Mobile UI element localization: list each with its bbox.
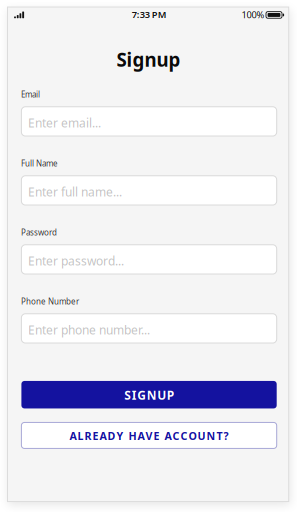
staticText: 7:33 PM [132, 8, 167, 21]
staticText: SIGNUP [124, 387, 174, 403]
staticText: Password [21, 227, 57, 238]
button[interactable]: Enter full name... [21, 176, 277, 205]
staticText: Enter full name... [28, 184, 122, 200]
button[interactable]: ALREADY HAVE ACCOUNT? [21, 422, 277, 448]
staticText: Enter phone number... [28, 322, 150, 338]
staticText: Full Name [21, 158, 58, 169]
staticText: Email [21, 89, 40, 100]
staticText: Enter email... [28, 115, 101, 131]
button[interactable]: Enter password... [21, 245, 277, 274]
staticText: 100% [241, 9, 264, 21]
button[interactable]: SIGNUP [21, 381, 277, 408]
staticText: Signup [117, 47, 181, 72]
staticText: Phone Number [21, 296, 79, 307]
button[interactable]: Enter phone number... [21, 314, 277, 343]
staticText: Enter password... [28, 253, 124, 269]
button[interactable]: Enter email... [21, 107, 277, 136]
staticText: ALREADY HAVE ACCOUNT? [70, 429, 229, 443]
